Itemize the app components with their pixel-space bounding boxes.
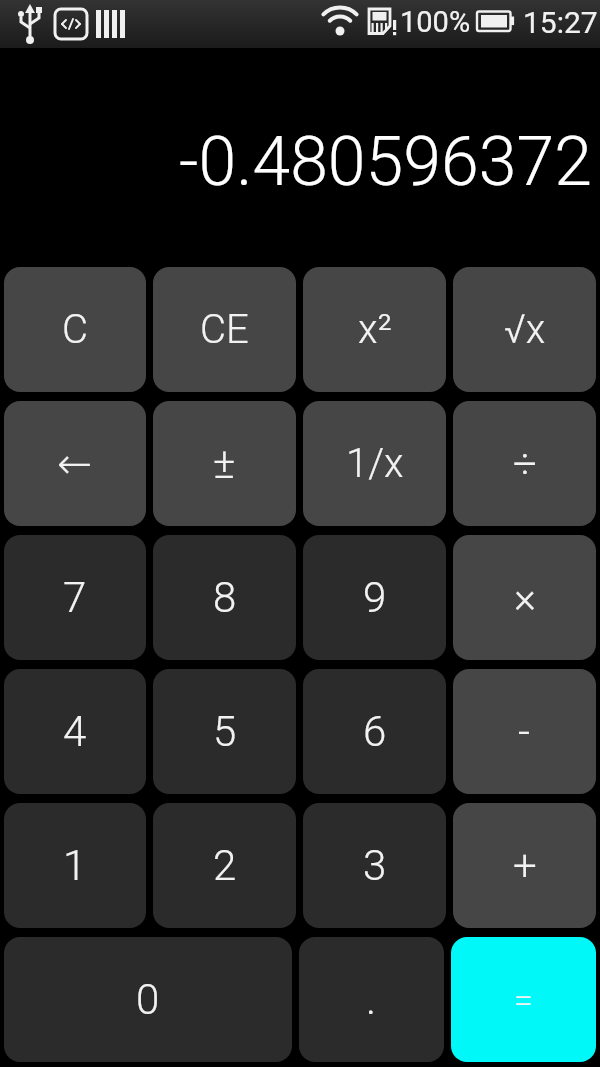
- staticText: =: [514, 980, 533, 1020]
- staticText: 15:27: [523, 5, 598, 40]
- staticText: 8: [213, 573, 237, 622]
- button[interactable]: ÷: [453, 401, 596, 526]
- staticText: ←: [57, 439, 93, 488]
- staticText: 3: [363, 841, 387, 890]
- button[interactable]: ±: [153, 401, 296, 526]
- button[interactable]: 2: [153, 803, 296, 928]
- staticText: ×: [514, 573, 536, 622]
- button[interactable]: √x: [453, 267, 596, 392]
- staticText: 7: [63, 573, 87, 622]
- staticText: 9: [363, 573, 387, 622]
- staticText: 6: [363, 707, 387, 756]
- button[interactable]: ×: [453, 535, 596, 660]
- staticText: CE: [200, 306, 249, 353]
- button[interactable]: =: [451, 937, 596, 1062]
- button[interactable]: ←: [4, 401, 146, 526]
- button[interactable]: 4: [4, 669, 146, 794]
- button[interactable]: x²: [303, 267, 446, 392]
- staticText: .: [366, 975, 377, 1024]
- button[interactable]: +: [453, 803, 596, 928]
- button[interactable]: 6: [303, 669, 446, 794]
- button[interactable]: 1: [4, 803, 146, 928]
- staticText: √x: [504, 306, 546, 353]
- staticText: 2: [213, 841, 237, 890]
- staticText: x²: [358, 306, 392, 353]
- button[interactable]: C: [4, 267, 146, 392]
- staticText: 4: [63, 707, 87, 756]
- button[interactable]: 3: [303, 803, 446, 928]
- button[interactable]: 1/x: [303, 401, 446, 526]
- staticText: C: [62, 306, 88, 353]
- staticText: 0: [136, 975, 160, 1024]
- button[interactable]: 9: [303, 535, 446, 660]
- button[interactable]: 0: [4, 937, 292, 1062]
- button[interactable]: 8: [153, 535, 296, 660]
- staticText: -0.480596372: [179, 122, 592, 202]
- staticText: ±: [213, 439, 236, 488]
- staticText: -: [518, 707, 531, 756]
- button[interactable]: 7: [4, 535, 146, 660]
- staticText: 5: [213, 707, 237, 756]
- button[interactable]: 5: [153, 669, 296, 794]
- staticText: 1/x: [346, 440, 404, 487]
- button[interactable]: .: [299, 937, 444, 1062]
- staticText: +: [513, 841, 537, 890]
- staticText: ÷: [513, 439, 537, 488]
- staticText: 100%: [400, 5, 471, 39]
- button[interactable]: -: [453, 669, 596, 794]
- button[interactable]: CE: [153, 267, 296, 392]
- staticText: 1: [63, 841, 87, 890]
